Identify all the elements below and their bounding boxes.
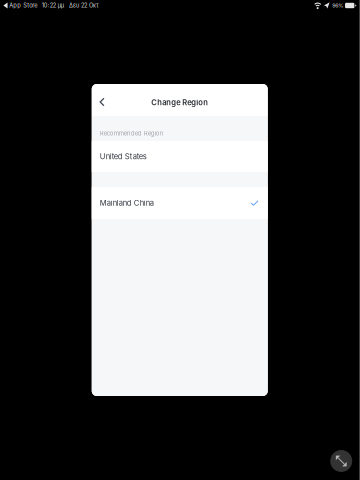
- staticText: Mainland China: [100, 198, 154, 208]
- button[interactable]: Mainland China: [92, 187, 268, 219]
- button[interactable]: United States: [92, 141, 268, 172]
- staticText: United States: [100, 152, 147, 161]
- staticText: 10:22 μμ: [42, 2, 64, 9]
- staticText: Change Region: [151, 98, 208, 107]
- staticText: 96%: [332, 2, 343, 9]
- staticText: Δευ 22 Οκτ: [69, 2, 99, 9]
- button[interactable]: Expand: [330, 450, 352, 472]
- staticText: Recommended Region: [100, 130, 164, 137]
- button[interactable]: Back: [92, 84, 122, 116]
- staticText: App Store: [9, 2, 37, 9]
